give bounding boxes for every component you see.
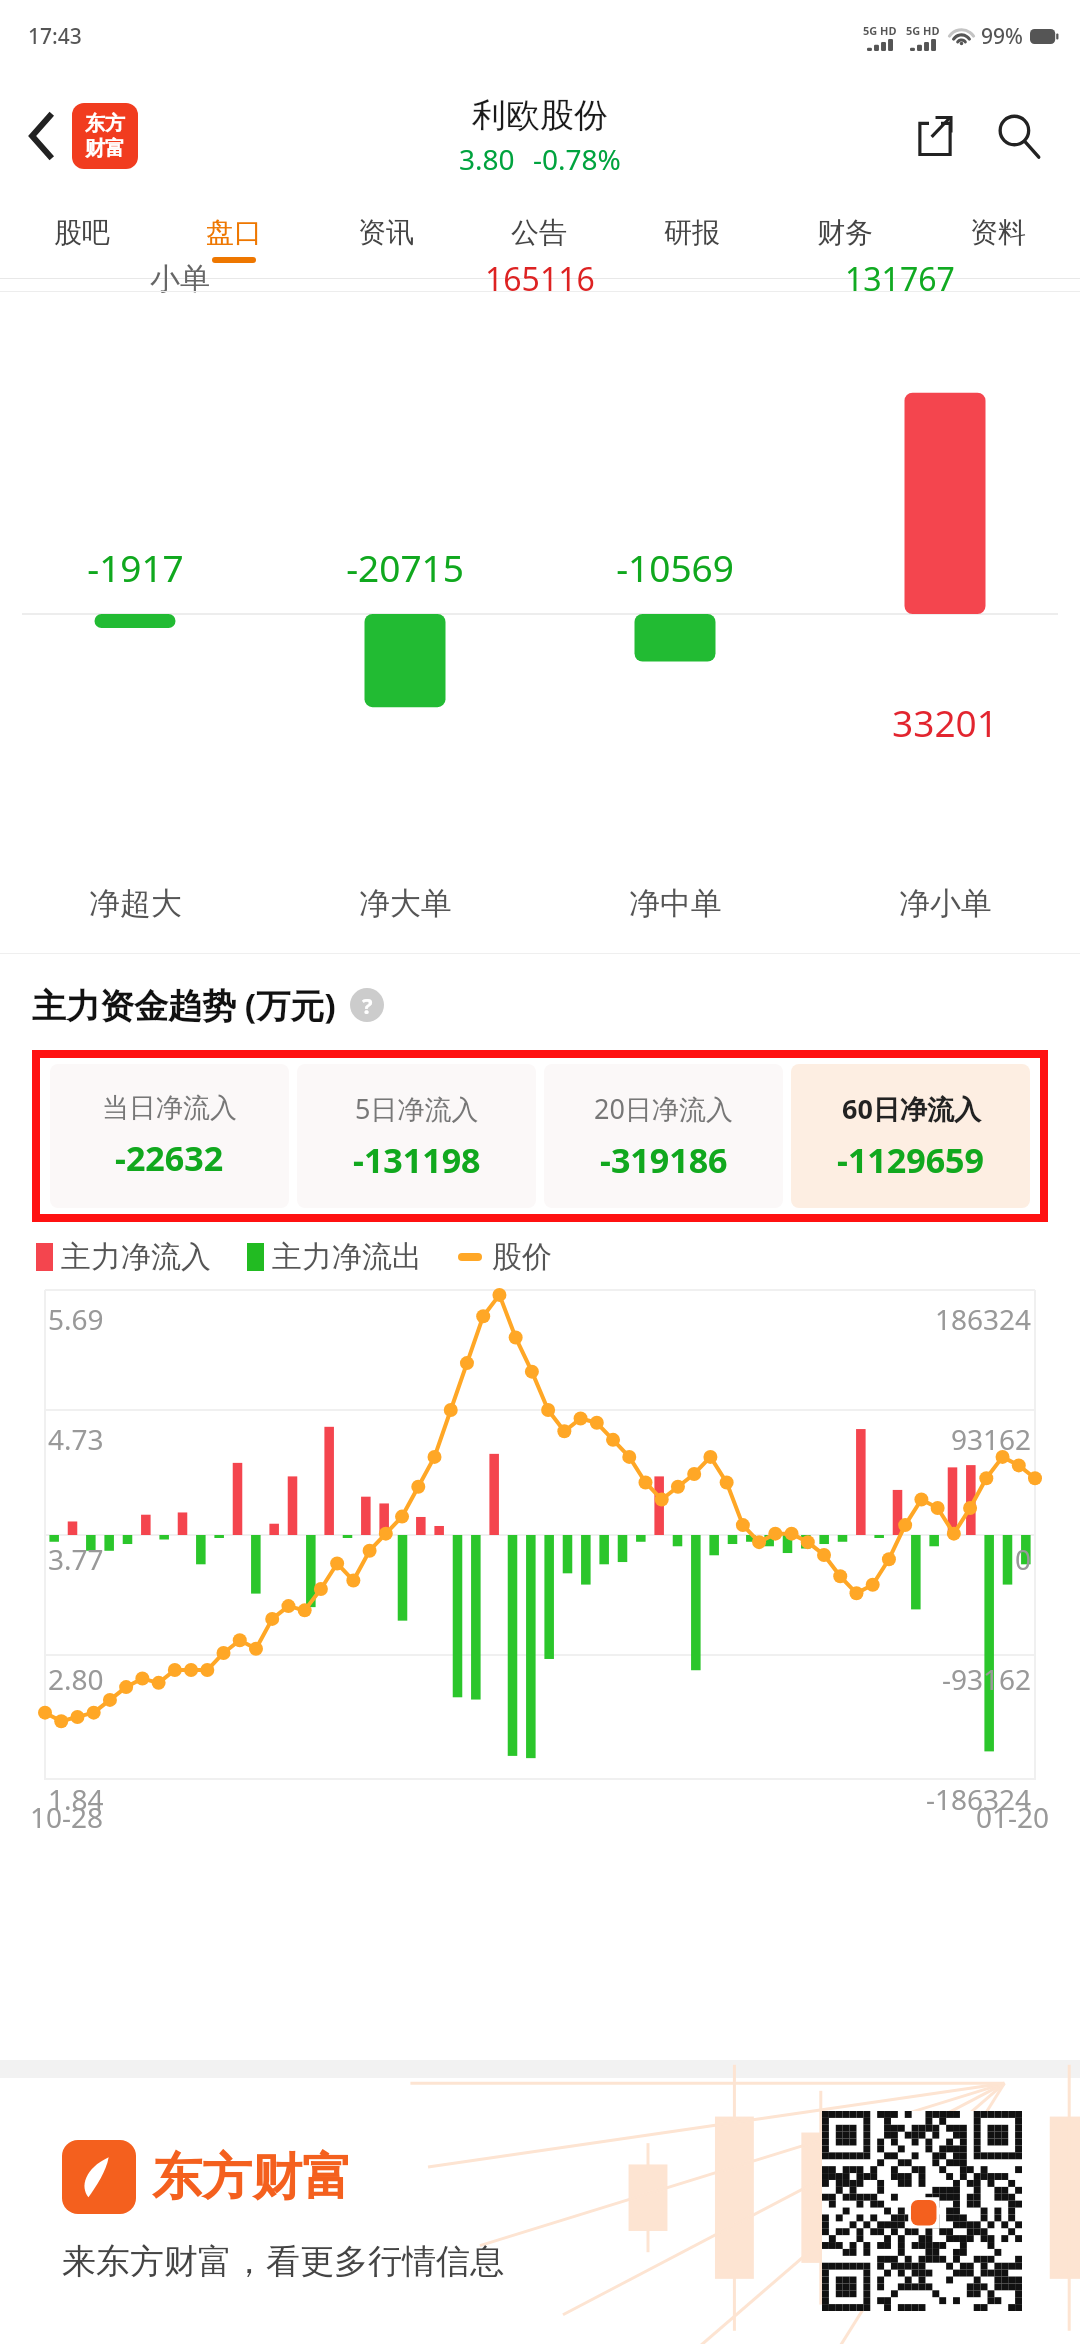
button[interactable]: 研报 xyxy=(615,200,768,278)
staticText: 93162 xyxy=(951,1420,1032,1458)
button[interactable]: 33201 xyxy=(810,347,1080,947)
button[interactable]: 财务 xyxy=(768,200,921,278)
staticText: 5G HD xyxy=(906,23,940,38)
staticText: 股吧 xyxy=(54,215,110,250)
staticText: 165116 xyxy=(485,257,595,301)
button[interactable]: 60日净流入 xyxy=(791,1064,1030,1208)
staticText: 净小单 xyxy=(899,884,992,923)
staticText: 5日净流入 xyxy=(355,1090,479,1127)
button[interactable]: 当日净流入 xyxy=(50,1064,289,1208)
staticText: -1917 xyxy=(87,542,184,592)
staticText: 2.80 xyxy=(48,1660,104,1698)
button[interactable]: 股吧 xyxy=(6,200,158,278)
button[interactable]: -20715 xyxy=(270,347,540,947)
staticText: 研报 xyxy=(664,215,720,250)
staticText: ? xyxy=(362,990,373,1020)
staticText: 资料 xyxy=(970,215,1026,250)
button[interactable]: East Money logo xyxy=(72,103,138,169)
staticText: -1129659 xyxy=(837,1137,985,1183)
staticText: 33201 xyxy=(892,697,998,747)
staticText: -131198 xyxy=(353,1137,481,1183)
button[interactable]: 5.69 xyxy=(0,1290,1080,1850)
button[interactable]: -10569 xyxy=(540,347,810,947)
staticText: 当日净流入 xyxy=(102,1091,237,1125)
button[interactable]: 公告 xyxy=(462,200,615,278)
staticText: 财务 xyxy=(817,215,873,250)
staticText: -319186 xyxy=(600,1137,728,1183)
staticText: 资讯 xyxy=(358,215,414,250)
staticText: 1.84 xyxy=(48,1780,104,1818)
staticText: 17:43 xyxy=(28,22,82,51)
staticText: 10-28 xyxy=(30,1798,104,1836)
staticText: 主力净流入 xyxy=(61,1238,211,1276)
staticText: 公告 xyxy=(511,215,567,250)
button[interactable]: Search xyxy=(982,99,1056,173)
button[interactable]: 盘口 xyxy=(158,200,310,278)
button[interactable]: -1917 xyxy=(0,347,270,947)
staticText: 东方 xyxy=(85,111,125,136)
button[interactable]: Help xyxy=(350,988,384,1022)
staticText: -22632 xyxy=(115,1135,224,1181)
staticText: 131767 xyxy=(845,257,955,301)
staticText: 01-20 xyxy=(976,1798,1050,1836)
staticText: -93162 xyxy=(942,1660,1032,1698)
staticText: 财富 xyxy=(85,136,125,161)
staticText: 99% xyxy=(981,22,1023,51)
staticText: -10569 xyxy=(616,542,734,592)
staticText: -186324 xyxy=(926,1780,1032,1818)
button[interactable]: 5日净流入 xyxy=(297,1064,536,1208)
staticText: 20日净流入 xyxy=(594,1090,733,1127)
button[interactable]: 资讯 xyxy=(310,200,462,278)
staticText: 小单 xyxy=(150,260,210,298)
button[interactable]: Share xyxy=(898,99,972,173)
staticText: 净超大 xyxy=(89,884,182,923)
staticText: 来东方财富，看更多行情信息 xyxy=(62,2240,504,2283)
staticText: 0 xyxy=(1015,1540,1032,1578)
button[interactable]: Back xyxy=(14,108,70,164)
staticText: 东方财富 xyxy=(152,2146,352,2209)
staticText: 4.73 xyxy=(48,1420,104,1458)
staticText: 主力净流出 xyxy=(272,1238,422,1276)
button[interactable]: 东方财富 xyxy=(0,2078,1080,2344)
staticText: 主力资金趋势 (万元) xyxy=(32,982,336,1028)
staticText: 3.77 xyxy=(48,1540,104,1578)
staticText: 股价 xyxy=(492,1238,552,1276)
staticText: 净中单 xyxy=(629,884,722,923)
button[interactable]: 20日净流入 xyxy=(544,1064,783,1208)
staticText: 盘口 xyxy=(206,215,262,250)
button[interactable]: 资料 xyxy=(921,200,1074,278)
staticText: 3.80 xyxy=(459,140,515,178)
staticText: 60日净流入 xyxy=(842,1090,981,1127)
staticText: 净大单 xyxy=(359,884,452,923)
staticText: 5G HD xyxy=(863,23,897,38)
staticText: -0.78% xyxy=(533,140,621,178)
staticText: 186324 xyxy=(935,1300,1032,1338)
staticText: 5.69 xyxy=(48,1300,104,1338)
staticText: 利欧股份 xyxy=(472,94,608,137)
staticText: -20715 xyxy=(346,542,464,592)
